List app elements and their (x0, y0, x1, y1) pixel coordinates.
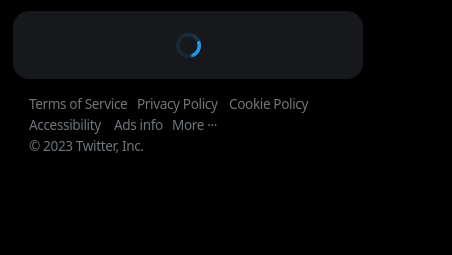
other: Loading (176, 33, 201, 58)
button[interactable]: Ads info (114, 115, 163, 134)
staticText: Ads info (114, 115, 163, 134)
staticText: More ··· (172, 115, 217, 134)
staticText: Terms of Service (29, 94, 128, 113)
button[interactable]: Cookie Policy (229, 94, 308, 113)
button[interactable]: More ··· (172, 115, 217, 134)
staticText: © 2023 Twitter, Inc. (29, 136, 144, 155)
button[interactable]: Terms of Service (29, 94, 128, 113)
button[interactable]: Privacy Policy (137, 94, 218, 113)
button[interactable]: Accessibility (29, 115, 101, 134)
staticText: Privacy Policy (137, 94, 218, 113)
staticText: Cookie Policy (229, 94, 308, 113)
staticText: Accessibility (29, 115, 101, 134)
